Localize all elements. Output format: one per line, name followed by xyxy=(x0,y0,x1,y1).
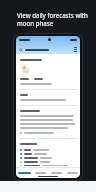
button[interactable]: Search location xyxy=(19,45,77,54)
button[interactable] xyxy=(20,157,76,159)
button[interactable] xyxy=(20,165,76,166)
button[interactable]: 10 Days xyxy=(64,168,80,178)
button[interactable] xyxy=(20,149,76,151)
button[interactable]: Hourly xyxy=(48,168,64,178)
button[interactable]: Rain xyxy=(32,168,48,178)
button[interactable] xyxy=(20,58,76,61)
button[interactable]: Today xyxy=(16,168,32,178)
button[interactable] xyxy=(20,153,76,155)
staticText: View daily forecasts with moon phase xyxy=(17,11,88,27)
button[interactable] xyxy=(20,161,76,163)
